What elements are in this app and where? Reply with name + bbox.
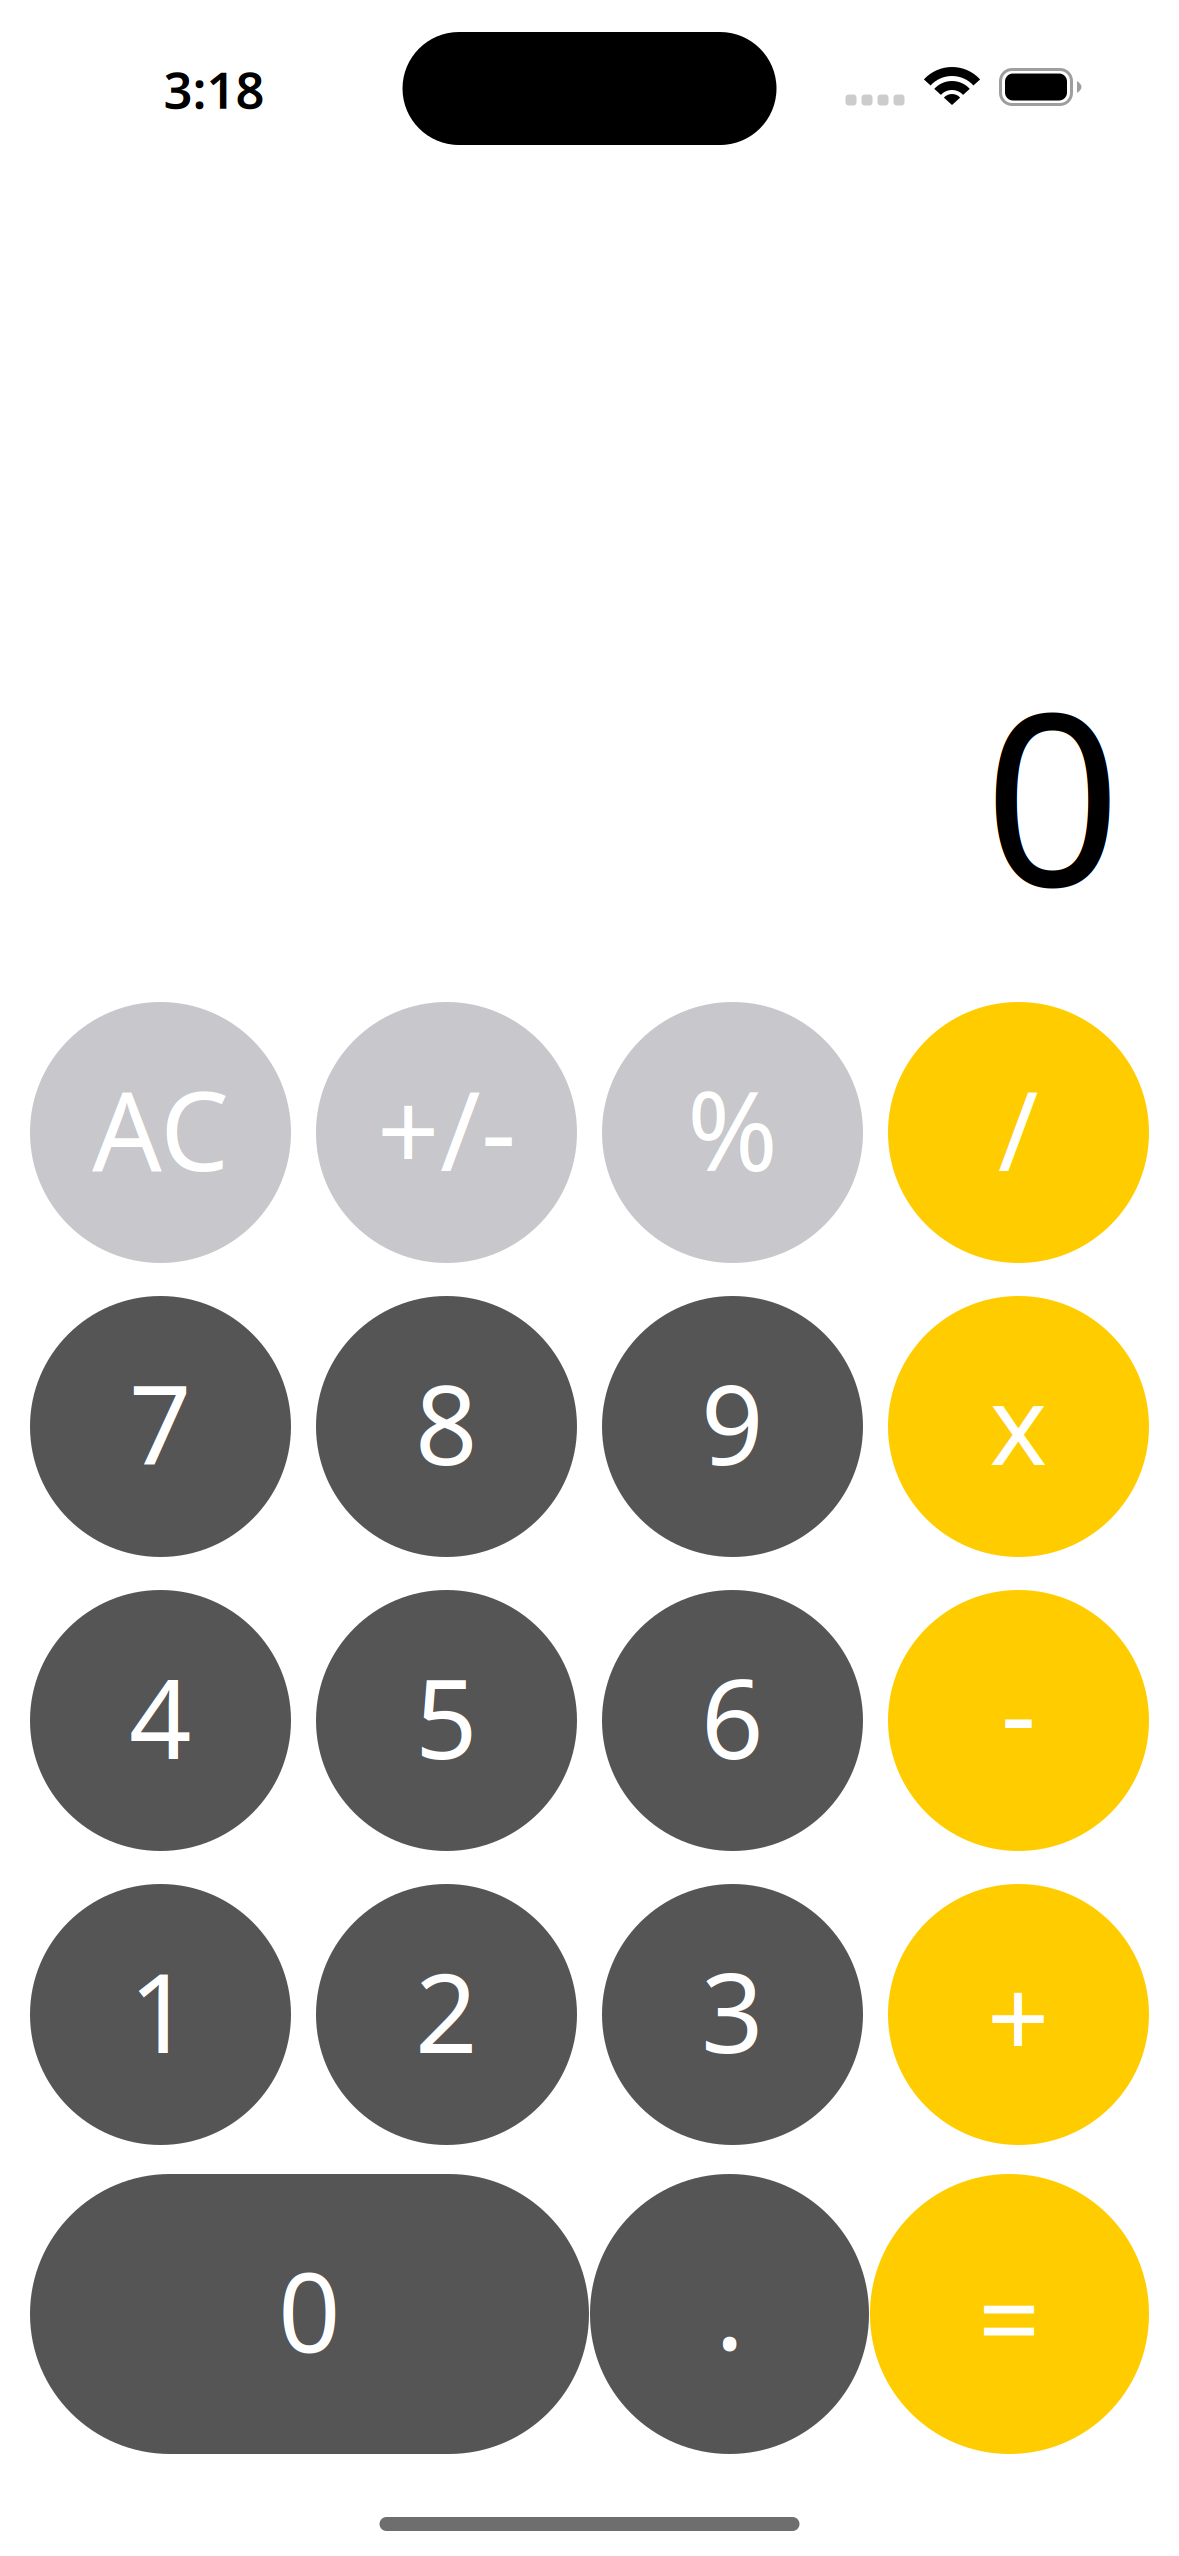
button[interactable]: 3 [602, 1884, 863, 2145]
staticText: 3 [701, 1938, 764, 2083]
staticText: 3:18 [163, 55, 264, 123]
button[interactable]: 2 [316, 1884, 577, 2145]
button[interactable]: 1 [30, 1884, 291, 2145]
button[interactable]: + [888, 1884, 1149, 2145]
button[interactable]: % [602, 1002, 863, 1263]
button[interactable]: 5 [316, 1590, 577, 1851]
button[interactable]: 4 [30, 1590, 291, 1851]
staticText: % [687, 1056, 778, 1201]
button[interactable]: 8 [316, 1296, 577, 1557]
staticText: 0 [278, 2237, 341, 2383]
staticText: 4 [129, 1644, 192, 1789]
button[interactable]: +/- [316, 1002, 577, 1263]
button[interactable]: 6 [602, 1590, 863, 1851]
button[interactable]: 0 [30, 2174, 589, 2454]
staticText: + [987, 1943, 1050, 2088]
staticText: x [989, 1350, 1047, 1495]
staticText: - [1001, 1638, 1036, 1783]
staticText: 2 [415, 1938, 478, 2083]
staticText: +/- [377, 1056, 516, 1201]
button[interactable]: - [888, 1590, 1149, 1851]
staticText: 7 [129, 1350, 192, 1495]
staticText: / [998, 1056, 1039, 1201]
staticText: 1 [129, 1938, 192, 2083]
button[interactable]: x [888, 1296, 1149, 1557]
button[interactable]: 7 [30, 1296, 291, 1557]
button[interactable]: = [870, 2174, 1149, 2454]
staticText: 8 [415, 1350, 478, 1495]
staticText: 0 [984, 634, 1121, 953]
staticText: 6 [701, 1644, 764, 1789]
button[interactable]: / [888, 1002, 1149, 1263]
staticText: 5 [415, 1644, 478, 1789]
staticText: . [715, 2234, 744, 2380]
staticText: = [978, 2244, 1041, 2390]
staticText: 9 [701, 1350, 764, 1495]
staticText: AC [92, 1056, 229, 1201]
button[interactable]: 9 [602, 1296, 863, 1557]
button[interactable]: . [590, 2174, 869, 2454]
button[interactable]: AC [30, 1002, 291, 1263]
